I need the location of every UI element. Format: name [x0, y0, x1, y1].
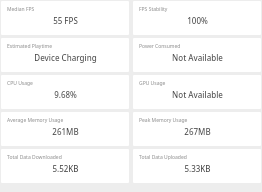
staticText: 5.52KB	[52, 163, 79, 174]
staticText: 9.68%	[54, 89, 77, 100]
staticText: 55 FPS	[53, 15, 78, 26]
staticText: Median FPS	[7, 6, 35, 13]
staticText: Power Consumed	[139, 43, 181, 50]
button[interactable]: Total Data Uploaded	[133, 149, 261, 183]
staticText: Total Data Downloaded	[7, 154, 62, 161]
button[interactable]: Estimated Playtime	[1, 38, 129, 72]
button[interactable]: GPU Usage	[133, 75, 261, 109]
button[interactable]: Power Consumed	[133, 38, 261, 72]
staticText: FPS Stability	[139, 6, 168, 13]
staticText: Not Available	[172, 89, 223, 100]
staticText: Total Data Uploaded	[139, 154, 187, 161]
button[interactable]: CPU Usage	[1, 75, 129, 109]
staticText: Estimated Playtime	[7, 43, 53, 50]
button[interactable]: Median FPS	[1, 1, 129, 35]
staticText: 5.33KB	[184, 163, 211, 174]
staticText: Device Charging	[34, 52, 97, 63]
staticText: GPU Usage	[139, 80, 166, 87]
staticText: 261MB	[52, 126, 79, 137]
staticText: Peak Memory Usage	[139, 117, 188, 124]
staticText: CPU Usage	[7, 80, 33, 87]
staticText: Not Available	[172, 52, 223, 63]
button[interactable]: Total Data Downloaded	[1, 149, 129, 183]
staticText: 100%	[187, 15, 208, 26]
button[interactable]: Average Memory Usage	[1, 112, 129, 146]
staticText: 267MB	[184, 126, 211, 137]
button[interactable]: FPS Stability	[133, 1, 261, 35]
button[interactable]: Peak Memory Usage	[133, 112, 261, 146]
staticText: Average Memory Usage	[7, 117, 64, 124]
